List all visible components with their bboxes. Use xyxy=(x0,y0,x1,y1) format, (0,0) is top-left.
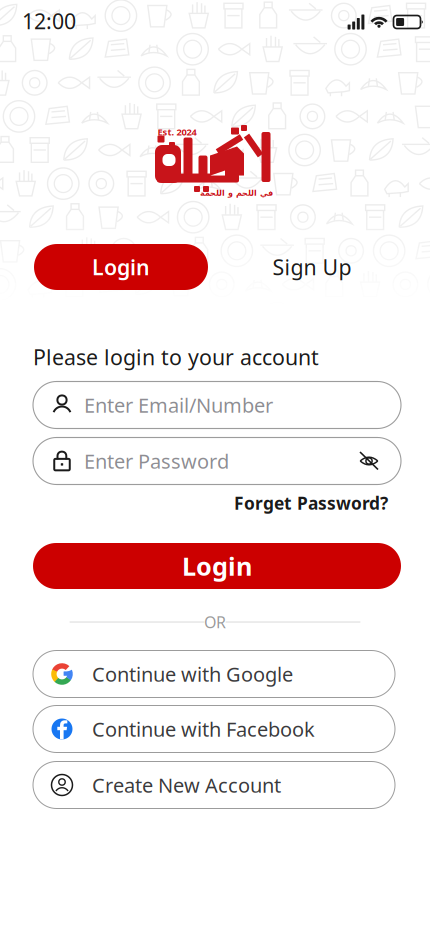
button[interactable]: Continue with Google xyxy=(33,650,395,697)
staticText: Enter Password xyxy=(84,448,229,474)
staticText: Est. 2024 xyxy=(157,126,196,138)
staticText: Forget Password? xyxy=(234,491,388,514)
staticText: Sign Up xyxy=(272,253,351,281)
staticText: OR xyxy=(204,611,226,633)
button[interactable]: Show password xyxy=(358,450,380,471)
button[interactable]: Sign Up xyxy=(242,244,382,290)
staticText: Enter Email/Number xyxy=(84,392,273,418)
staticText: 12:00 xyxy=(22,7,76,35)
staticText: Continue with Google xyxy=(92,661,293,687)
staticText: Please login to your account xyxy=(33,343,319,371)
button[interactable]: Create New Account xyxy=(33,761,395,808)
staticText: Login xyxy=(92,253,150,281)
button[interactable]: Login xyxy=(33,543,401,589)
staticText: Login xyxy=(182,549,252,583)
button[interactable]: Login xyxy=(34,244,208,290)
staticText: Create New Account xyxy=(92,772,281,798)
button[interactable]: Forget Password? xyxy=(188,493,388,513)
button[interactable]: Continue with Facebook xyxy=(33,705,395,752)
staticText: Continue with Facebook xyxy=(92,716,315,742)
staticText: في اللحم و اللحمة xyxy=(199,188,272,198)
